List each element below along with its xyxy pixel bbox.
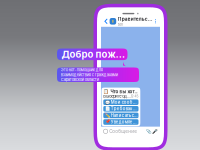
staticText: Что вы хотите сделать? [110,89,138,94]
staticText: Выберите одно из действий [103,94,130,99]
button[interactable]: Attach file [147,129,151,134]
button[interactable]: 📌 [103,119,138,125]
staticText: 📌 [104,119,109,124]
staticText: бот [118,22,124,26]
staticText: Уведомления [111,119,137,125]
staticText: Сообщение [109,129,137,134]
button[interactable]: Back [103,17,109,26]
button[interactable]: 💬 [103,99,138,105]
staticText: 📋 [103,89,109,94]
staticText: Требования к сообщению [111,106,137,111]
button[interactable]: More options [153,17,158,25]
staticText: Правительство Саратовс… [118,16,153,22]
button[interactable]: ✏️ [103,113,138,118]
staticText: 🎤 [152,129,158,134]
staticText: 💬 [104,100,109,105]
staticText: ✏️ [104,113,109,118]
button[interactable]: Record voice message [151,129,158,134]
button[interactable]: 📄 [103,106,138,112]
staticText: Написать сообщение [111,113,137,118]
staticText: 📎 [146,129,152,134]
staticText: Мои сообщения [111,100,137,105]
staticText: 12:45 [130,94,138,98]
staticText: Это бот-помощник для взаимодействия с гр… [61,67,118,82]
staticText: Добро пожаловать! [62,48,127,60]
staticText: 📄 [104,106,109,111]
